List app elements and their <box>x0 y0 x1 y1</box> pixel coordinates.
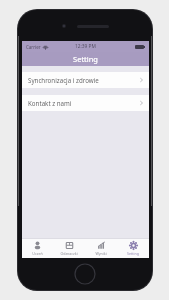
staticText: Uczeń <box>32 251 43 256</box>
button[interactable]: Wyniki <box>85 241 117 256</box>
staticText: Carrier <box>26 44 41 50</box>
button[interactable]: Setting <box>117 241 149 256</box>
staticText: Synchronizacja i zdrowie <box>28 76 140 84</box>
staticText: Setting <box>73 54 98 64</box>
button[interactable]: Uczeń <box>22 241 53 256</box>
staticText: Setting <box>127 251 139 256</box>
staticText: Kontakt z nami <box>28 99 140 107</box>
button[interactable]: Kontakt z nami <box>22 95 149 111</box>
staticText: Odznaczki <box>60 251 78 256</box>
button[interactable]: Odznaczki <box>53 241 85 256</box>
staticText: 12:39 PM <box>75 43 96 50</box>
button[interactable]: Synchronizacja i zdrowie <box>22 72 149 88</box>
staticText: Wyniki <box>95 251 107 256</box>
